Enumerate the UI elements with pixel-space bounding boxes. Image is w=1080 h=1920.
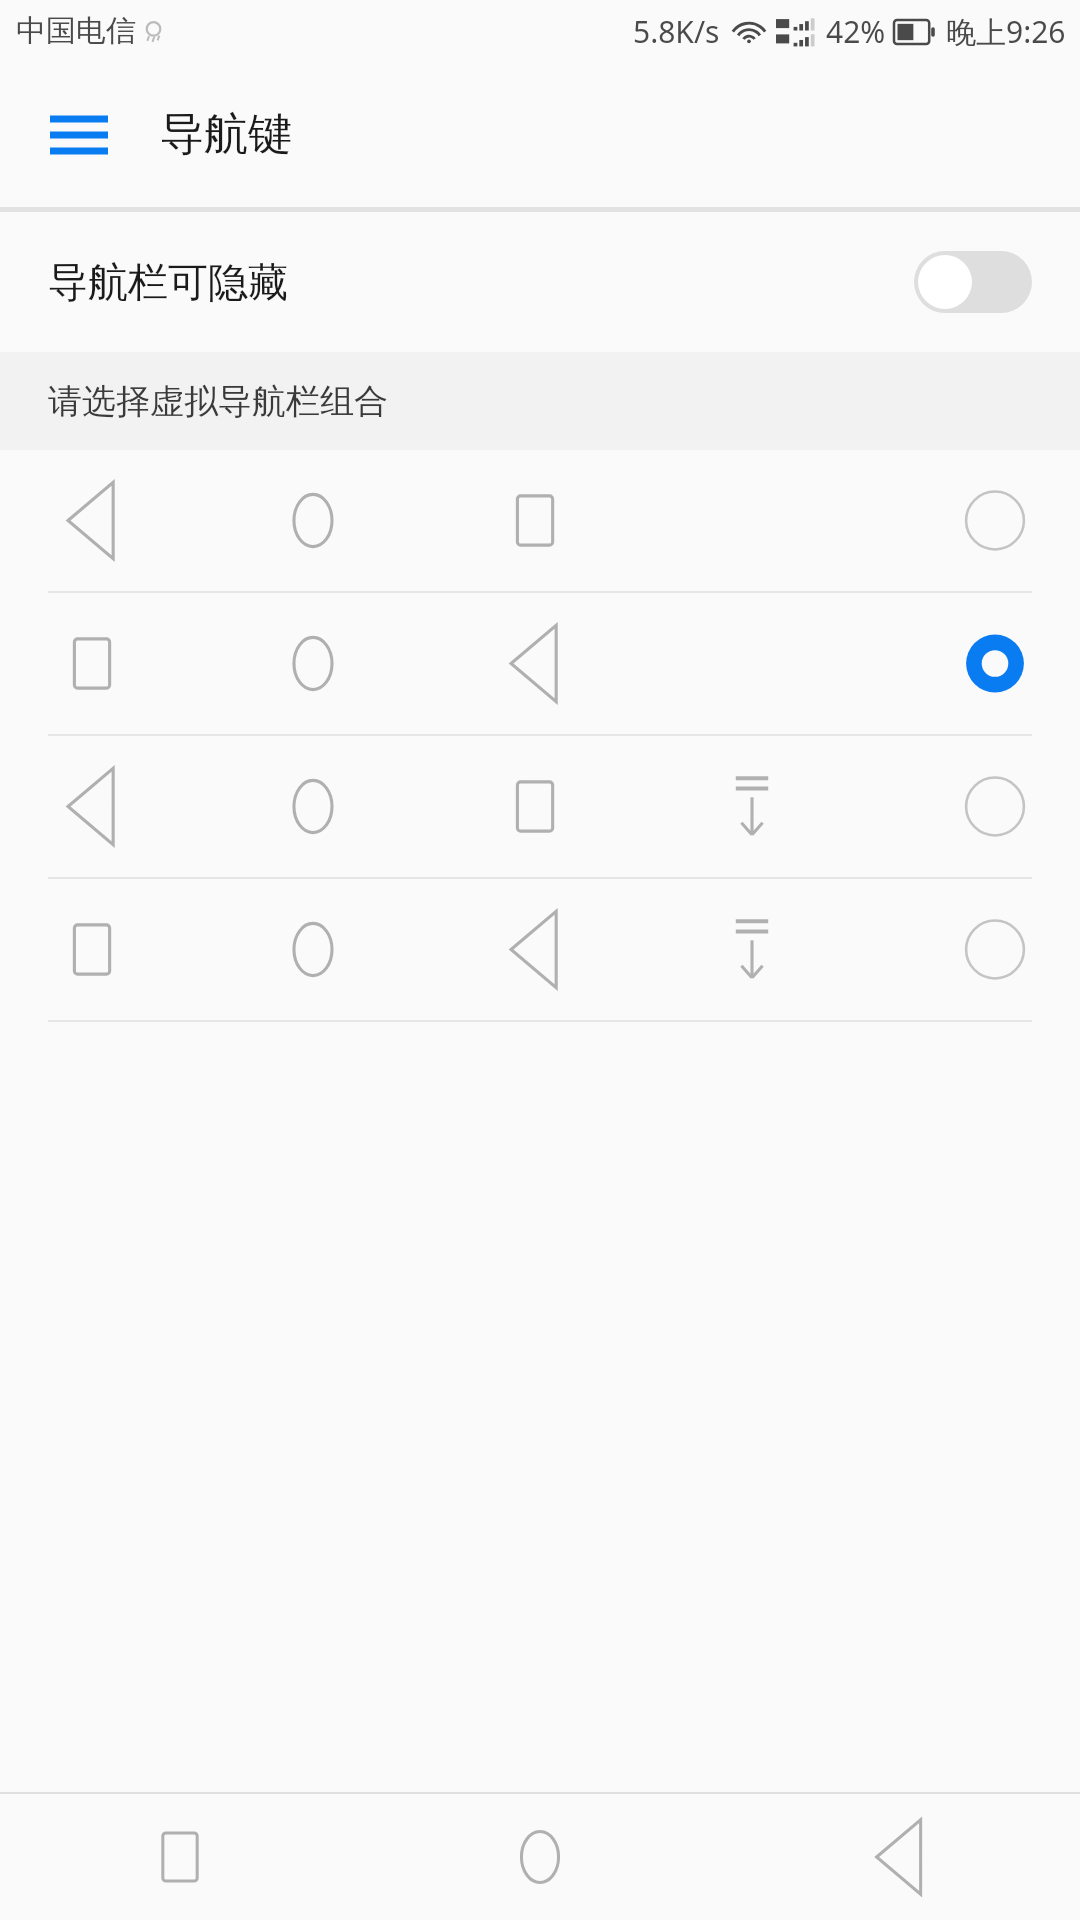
- staticText: 晚上9:26: [946, 11, 1066, 52]
- button[interactable]: 导航栏可隐藏: [0, 212, 1080, 352]
- staticText: 42%: [826, 11, 886, 52]
- button[interactable]: Navigation bar layout option: [0, 450, 1080, 591]
- staticText: 请选择虚拟导航栏组合: [48, 380, 388, 423]
- button[interactable]: Back: [720, 1794, 1080, 1920]
- staticText: 5.8K/s: [633, 11, 720, 52]
- button[interactable]: Recent apps: [0, 1794, 360, 1920]
- button[interactable]: Navigation bar layout option: [0, 879, 1080, 1020]
- button[interactable]: Home: [360, 1794, 720, 1920]
- button[interactable]: Menu: [40, 96, 118, 174]
- staticText: 中国电信: [16, 12, 136, 50]
- button[interactable]: Navigation bar layout option: [0, 736, 1080, 877]
- staticText: 导航栏可隐藏: [48, 257, 288, 307]
- button[interactable]: Navigation bar layout option: [0, 593, 1080, 734]
- staticText: 导航键: [160, 107, 292, 162]
